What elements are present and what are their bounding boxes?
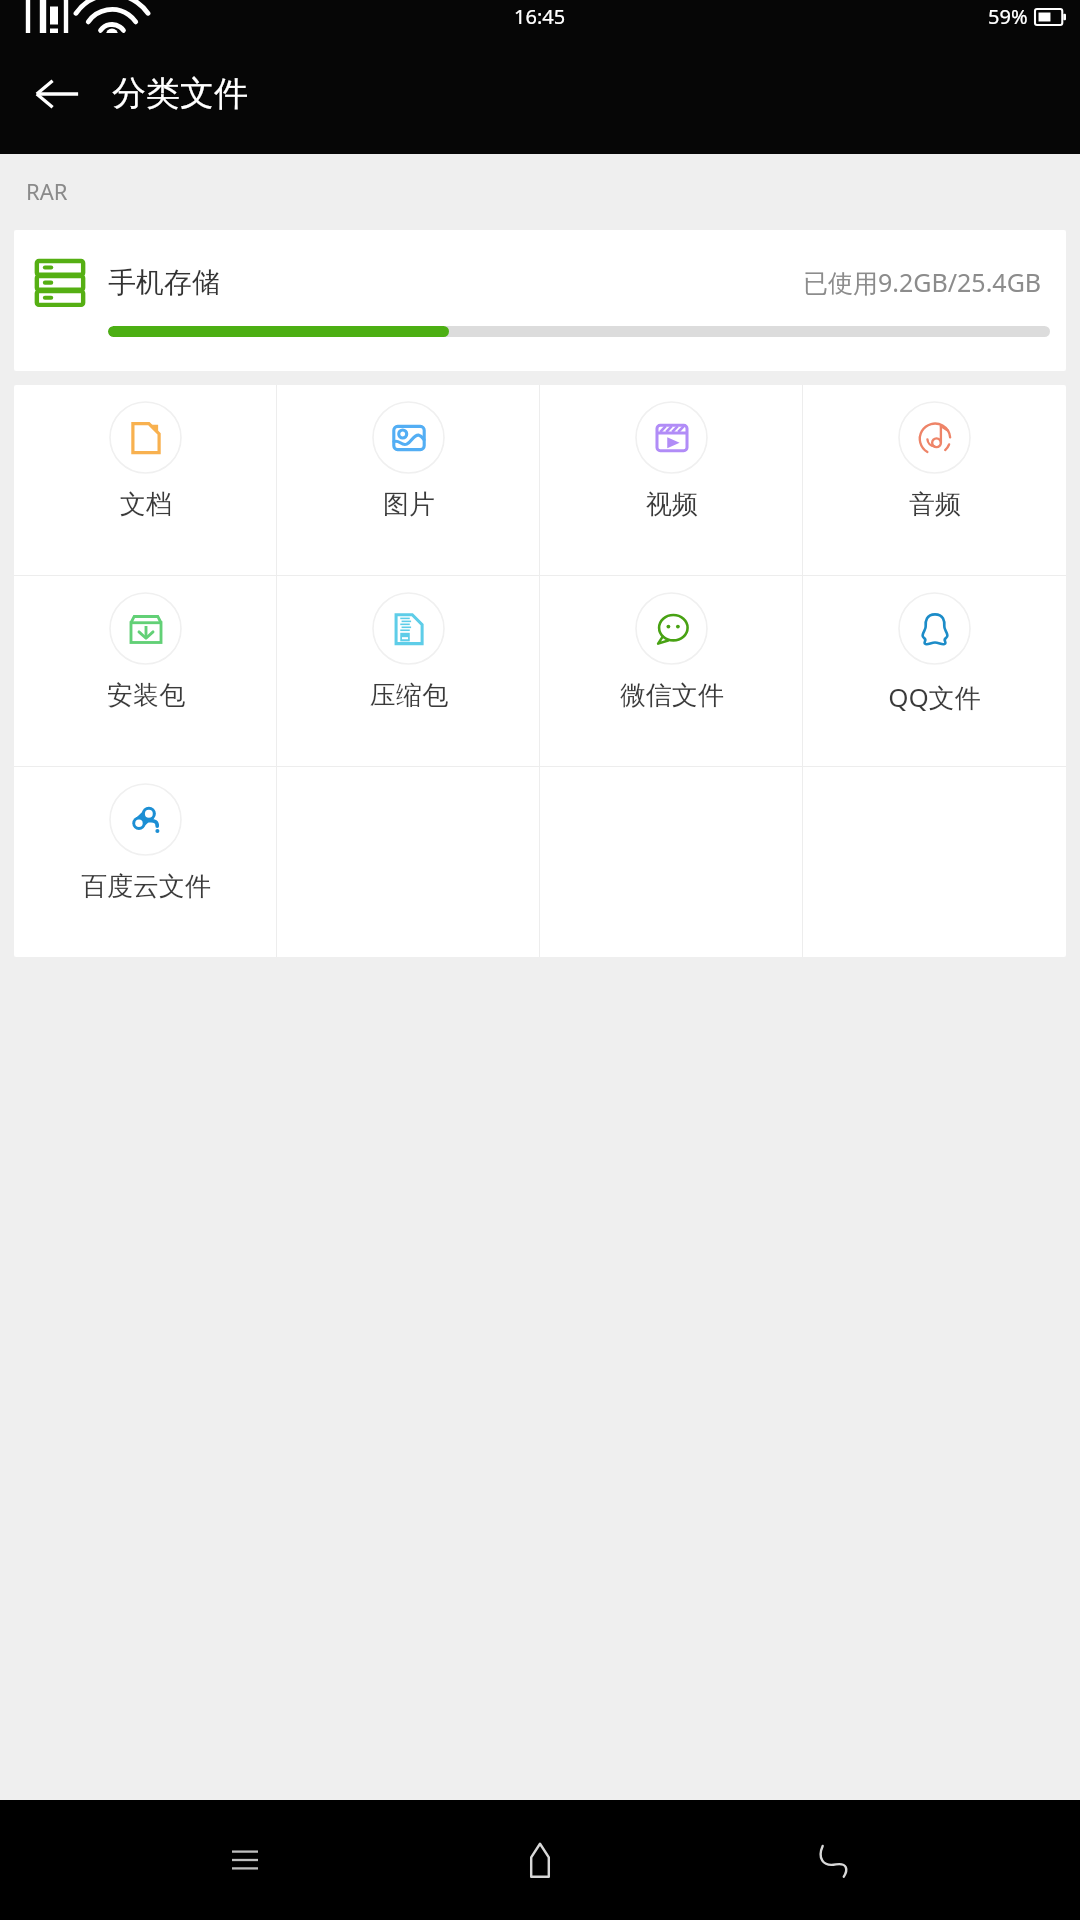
staticText: 图片 xyxy=(383,488,435,521)
button[interactable]: Menu xyxy=(195,1810,295,1910)
button[interactable]: QQ文件 xyxy=(803,576,1066,766)
button[interactable]: Home xyxy=(490,1810,590,1910)
button[interactable]: Back xyxy=(18,55,96,133)
button[interactable]: 微信文件 xyxy=(540,576,803,766)
staticText: 分类文件 xyxy=(112,72,248,115)
button[interactable]: 图片 xyxy=(277,385,540,575)
button[interactable]: 音频 xyxy=(803,385,1066,575)
staticText: 压缩包 xyxy=(370,679,448,712)
staticText: RAR xyxy=(26,176,68,206)
button[interactable]: 压缩包 xyxy=(277,576,540,766)
button[interactable]: 文档 xyxy=(14,385,277,575)
button[interactable]: Back xyxy=(785,1810,885,1910)
staticText: 16:45 xyxy=(514,3,566,30)
button[interactable]: 手机存储 xyxy=(14,230,1066,371)
staticText: 微信文件 xyxy=(620,679,724,712)
button[interactable]: 百度云文件 xyxy=(14,767,277,957)
staticText: QQ文件 xyxy=(888,679,981,715)
staticText: 文档 xyxy=(120,488,172,521)
staticText: 视频 xyxy=(646,488,698,521)
staticText: 音频 xyxy=(909,488,961,521)
button[interactable]: 安装包 xyxy=(14,576,277,766)
button[interactable]: 视频 xyxy=(540,385,803,575)
staticText: 安装包 xyxy=(107,679,185,712)
staticText: 已使用9.2GB/25.4GB xyxy=(803,265,1042,299)
staticText: 百度云文件 xyxy=(81,870,211,903)
staticText: 手机存储 xyxy=(108,265,220,300)
staticText: 59% xyxy=(988,3,1028,30)
